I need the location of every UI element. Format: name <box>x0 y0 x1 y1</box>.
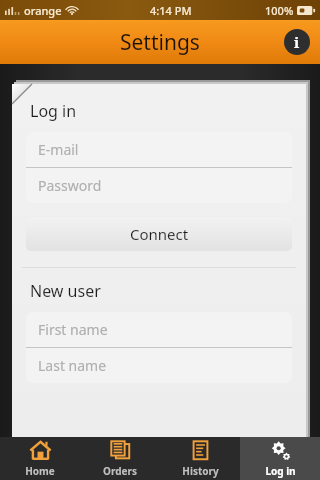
staticText: Password <box>38 176 102 195</box>
button[interactable]: History <box>160 437 240 480</box>
button[interactable]: Home <box>0 437 80 480</box>
button[interactable]: First name <box>26 312 292 347</box>
staticText: Home <box>25 464 55 478</box>
staticText: 100% <box>265 3 294 18</box>
button[interactable]: Password <box>26 168 292 203</box>
staticText: orange <box>24 3 62 18</box>
staticText: New user <box>30 280 101 302</box>
button[interactable]: Orders <box>80 437 160 480</box>
staticText: Orders <box>103 464 137 478</box>
staticText: Last name <box>38 356 107 375</box>
staticText: Settings <box>120 28 200 57</box>
staticText: First name <box>38 320 108 339</box>
button[interactable]: Info <box>284 29 310 55</box>
button[interactable]: Last name <box>26 348 292 383</box>
staticText: 4:14 PM <box>150 3 192 18</box>
staticText: Log in <box>265 464 296 478</box>
button[interactable]: Connect <box>26 217 292 251</box>
staticText: History <box>182 464 219 478</box>
button[interactable]: Log in <box>240 437 320 480</box>
staticText: Log in <box>30 100 77 122</box>
staticText: Connect <box>130 224 189 244</box>
staticText: E-mail <box>38 140 79 159</box>
button[interactable]: E-mail <box>26 132 292 167</box>
staticText: i <box>294 32 300 52</box>
